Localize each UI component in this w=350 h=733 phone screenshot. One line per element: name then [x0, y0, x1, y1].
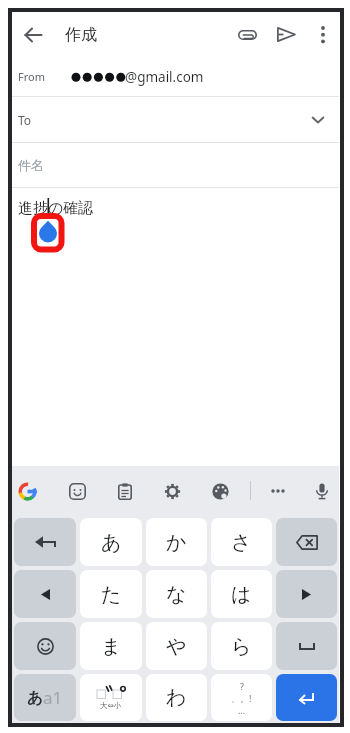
button[interactable]	[15, 478, 39, 504]
button[interactable]	[310, 478, 334, 504]
button[interactable]: さ	[211, 518, 272, 566]
button[interactable]	[113, 478, 137, 504]
button[interactable]	[14, 570, 76, 618]
staticText: 、。!	[231, 692, 252, 704]
staticText: 進捗の確認	[18, 199, 94, 218]
button[interactable]	[276, 622, 337, 670]
button[interactable]	[160, 478, 184, 504]
staticText: …	[238, 704, 246, 716]
button[interactable]	[14, 622, 76, 670]
staticText: a1	[43, 686, 63, 709]
button[interactable]: わ	[146, 674, 207, 721]
button[interactable]: や	[146, 622, 207, 670]
button[interactable]: た	[80, 570, 142, 618]
staticText: ?	[240, 680, 244, 692]
staticText: 作成	[65, 25, 97, 45]
staticText: ら	[231, 634, 252, 659]
staticText: は	[231, 582, 252, 607]
button[interactable]: ?	[211, 674, 272, 721]
button[interactable]: To	[12, 97, 339, 143]
button[interactable]: は	[211, 570, 272, 618]
button[interactable]: From	[12, 57, 339, 97]
button[interactable]	[276, 674, 337, 721]
button[interactable]: あ	[80, 518, 142, 566]
staticText: 大⇔小	[100, 701, 122, 710]
staticText: To	[18, 112, 32, 128]
staticText: 件名	[18, 157, 44, 173]
button[interactable]	[276, 518, 337, 566]
button[interactable]	[14, 518, 76, 566]
button[interactable]	[12, 12, 54, 57]
staticText: か	[166, 530, 187, 555]
button[interactable]: 大⇔小	[80, 674, 142, 721]
button[interactable]	[266, 478, 290, 504]
button[interactable]	[65, 478, 89, 504]
button[interactable]: ま	[80, 622, 142, 670]
staticText: さ	[231, 530, 252, 555]
button[interactable]	[276, 570, 337, 618]
staticText: や	[166, 634, 187, 659]
button[interactable]: か	[146, 518, 207, 566]
button[interactable]	[228, 12, 267, 57]
staticText: From	[18, 69, 45, 84]
staticText: あ	[101, 530, 122, 555]
button[interactable]	[208, 478, 232, 504]
staticText: な	[166, 582, 187, 607]
staticText: わ	[166, 685, 187, 710]
staticText: た	[101, 582, 122, 607]
staticText: @gmail.com	[125, 68, 204, 86]
button[interactable]: な	[146, 570, 207, 618]
button[interactable]: あ	[14, 674, 76, 721]
button[interactable]	[267, 12, 306, 57]
button[interactable]: ら	[211, 622, 272, 670]
button[interactable]	[306, 12, 339, 57]
staticText: あ	[27, 688, 43, 708]
button[interactable]: 進捗の確認	[12, 188, 339, 466]
button[interactable]: 件名	[12, 143, 339, 188]
staticText: ま	[101, 634, 122, 659]
